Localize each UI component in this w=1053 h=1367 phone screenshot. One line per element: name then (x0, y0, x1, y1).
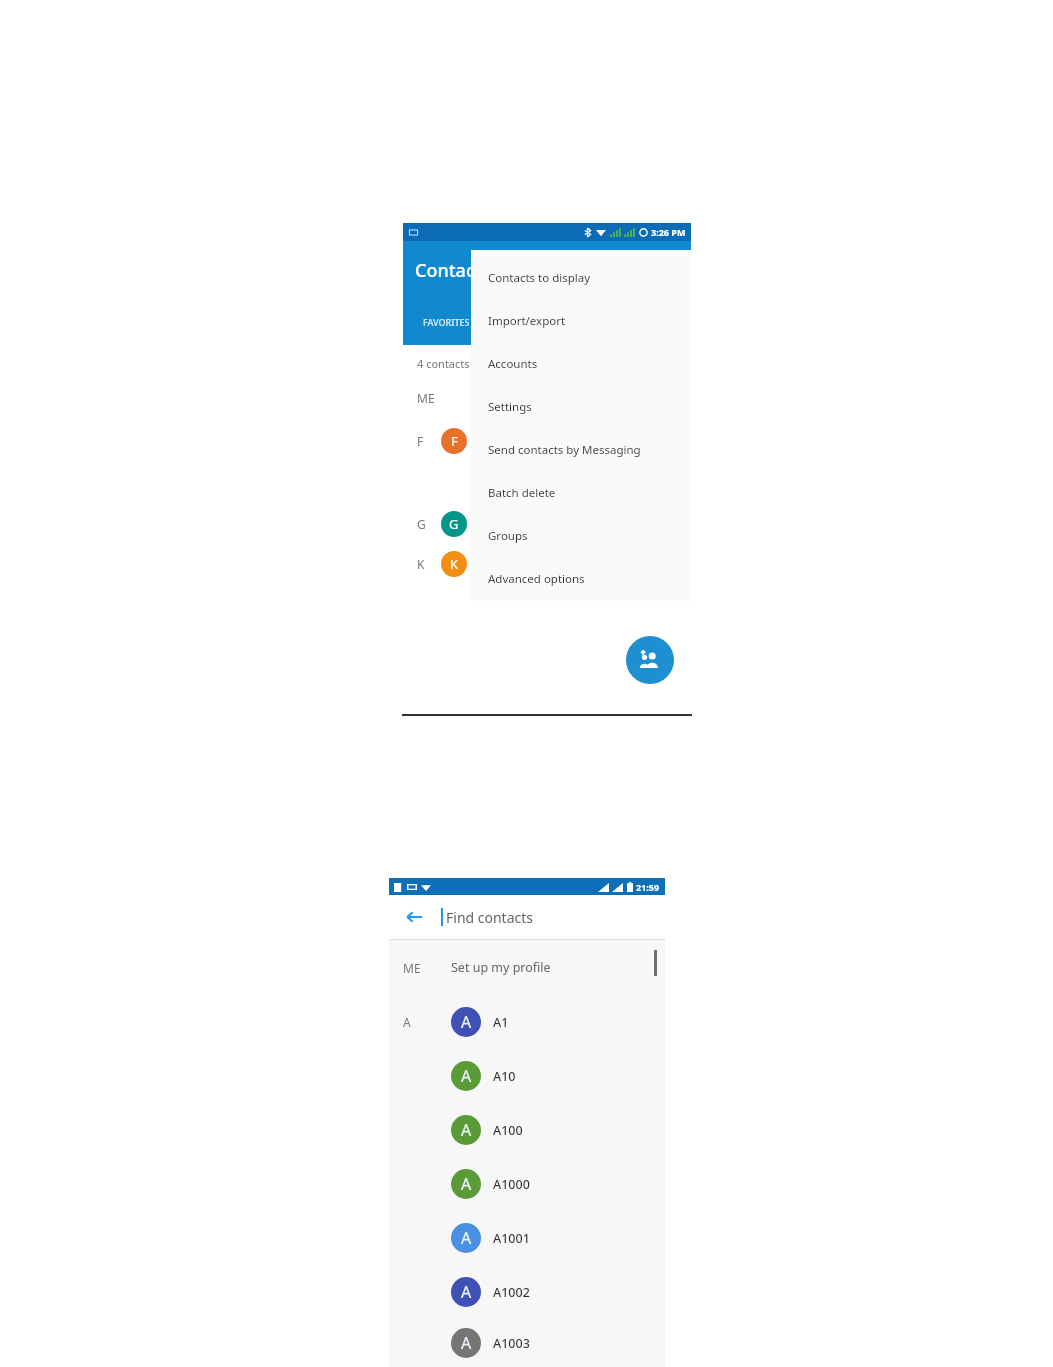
button[interactable]: ME (389, 940, 665, 995)
staticText: A (403, 1014, 411, 1030)
staticText: A1000 (493, 1176, 530, 1193)
staticText: A10 (493, 1068, 516, 1085)
button[interactable]: A (389, 1319, 665, 1367)
staticText: K (417, 556, 425, 572)
button[interactable]: Batch delete (471, 471, 691, 514)
staticText: K (450, 555, 459, 573)
button[interactable]: A (389, 1211, 665, 1265)
staticText: Batch delete (488, 485, 556, 501)
staticText: Groups (488, 528, 528, 544)
staticText: F (417, 433, 424, 449)
staticText: 3:26 PM (651, 226, 686, 238)
button[interactable]: A (389, 1157, 665, 1211)
staticText: ME (417, 390, 435, 406)
button[interactable]: Add contact (626, 636, 674, 684)
button[interactable]: Groups (471, 514, 691, 557)
staticText: F (451, 432, 458, 450)
button[interactable]: F (403, 415, 691, 467)
staticText: A (461, 1065, 472, 1087)
button[interactable]: A (389, 1265, 665, 1319)
button[interactable]: A (389, 1049, 665, 1103)
button[interactable]: Contacts to display (471, 256, 691, 299)
staticText: A (461, 1281, 472, 1303)
staticText: Set up my profile (451, 959, 551, 976)
staticText: A1 (493, 1014, 509, 1031)
staticText: Send contacts by Messaging (488, 442, 641, 458)
staticText: A (461, 1173, 472, 1195)
staticText: A (461, 1227, 472, 1249)
staticText: FAVORITES (423, 316, 470, 328)
button[interactable]: Settings (471, 385, 691, 428)
button[interactable]: A (389, 995, 665, 1049)
staticText: Accounts (488, 356, 538, 372)
button[interactable]: Accounts (471, 342, 691, 385)
staticText: 21:59 (636, 881, 660, 893)
staticText: Advanced options (488, 571, 585, 587)
staticText: ME (403, 960, 421, 976)
button[interactable]: ME (403, 381, 691, 415)
staticText: Import/export (488, 313, 566, 329)
staticText: A (461, 1332, 472, 1354)
staticText: G (417, 516, 426, 532)
staticText: A1002 (493, 1284, 530, 1301)
button[interactable]: Back (401, 904, 427, 930)
staticText: Settings (488, 399, 532, 415)
staticText: Find contacts (446, 908, 534, 927)
staticText: A (461, 1011, 472, 1033)
button[interactable]: Advanced options (471, 557, 691, 600)
button[interactable]: Send contacts by Messaging (471, 428, 691, 471)
button[interactable]: FAVORITES (403, 299, 489, 345)
staticText: A1001 (493, 1230, 530, 1247)
staticText: G (449, 515, 459, 533)
staticText: 4 contacts (417, 356, 470, 371)
staticText: A100 (493, 1122, 523, 1139)
button[interactable]: G (403, 507, 691, 541)
button[interactable]: K (403, 541, 691, 587)
staticText: Contacts (415, 258, 491, 283)
staticText: Contacts to display (488, 270, 591, 286)
staticText: A (461, 1119, 472, 1141)
staticText: A1003 (493, 1335, 530, 1352)
button[interactable]: A (389, 1103, 665, 1157)
button[interactable]: Import/export (471, 299, 691, 342)
